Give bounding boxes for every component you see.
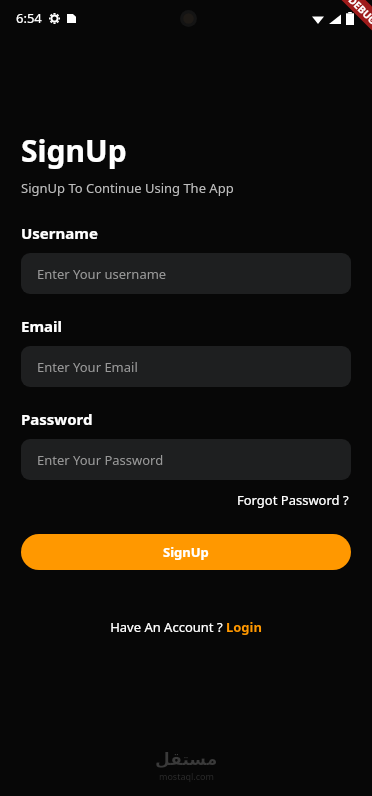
button[interactable]: Have An Account ? Login [107, 616, 265, 638]
staticText: Have An Account ? Login [110, 618, 262, 636]
staticText: 6:54 [16, 9, 42, 27]
staticText: Enter Your Password [37, 451, 164, 469]
staticText: Password [21, 409, 93, 429]
staticText: Enter Your username [37, 265, 167, 283]
button[interactable]: Enter Your username [21, 253, 351, 294]
staticText: مستقل [155, 749, 218, 769]
staticText: mostaql.com [159, 770, 214, 782]
staticText: Username [21, 223, 98, 243]
staticText: DEBUG [346, 0, 372, 27]
staticText: SignUp [163, 543, 209, 561]
button[interactable]: SignUp [21, 534, 351, 570]
staticText: SignUp To Continue Using The App [21, 179, 234, 197]
staticText: Email [21, 316, 62, 336]
staticText: Forgot Password ? [237, 491, 349, 509]
button[interactable]: Enter Your Password [21, 439, 351, 480]
staticText: SignUp [21, 130, 127, 171]
button[interactable]: Enter Your Email [21, 346, 351, 387]
button[interactable]: Forgot Password ? [235, 489, 351, 511]
staticText: Enter Your Email [37, 358, 138, 376]
other: Settings [49, 13, 60, 24]
